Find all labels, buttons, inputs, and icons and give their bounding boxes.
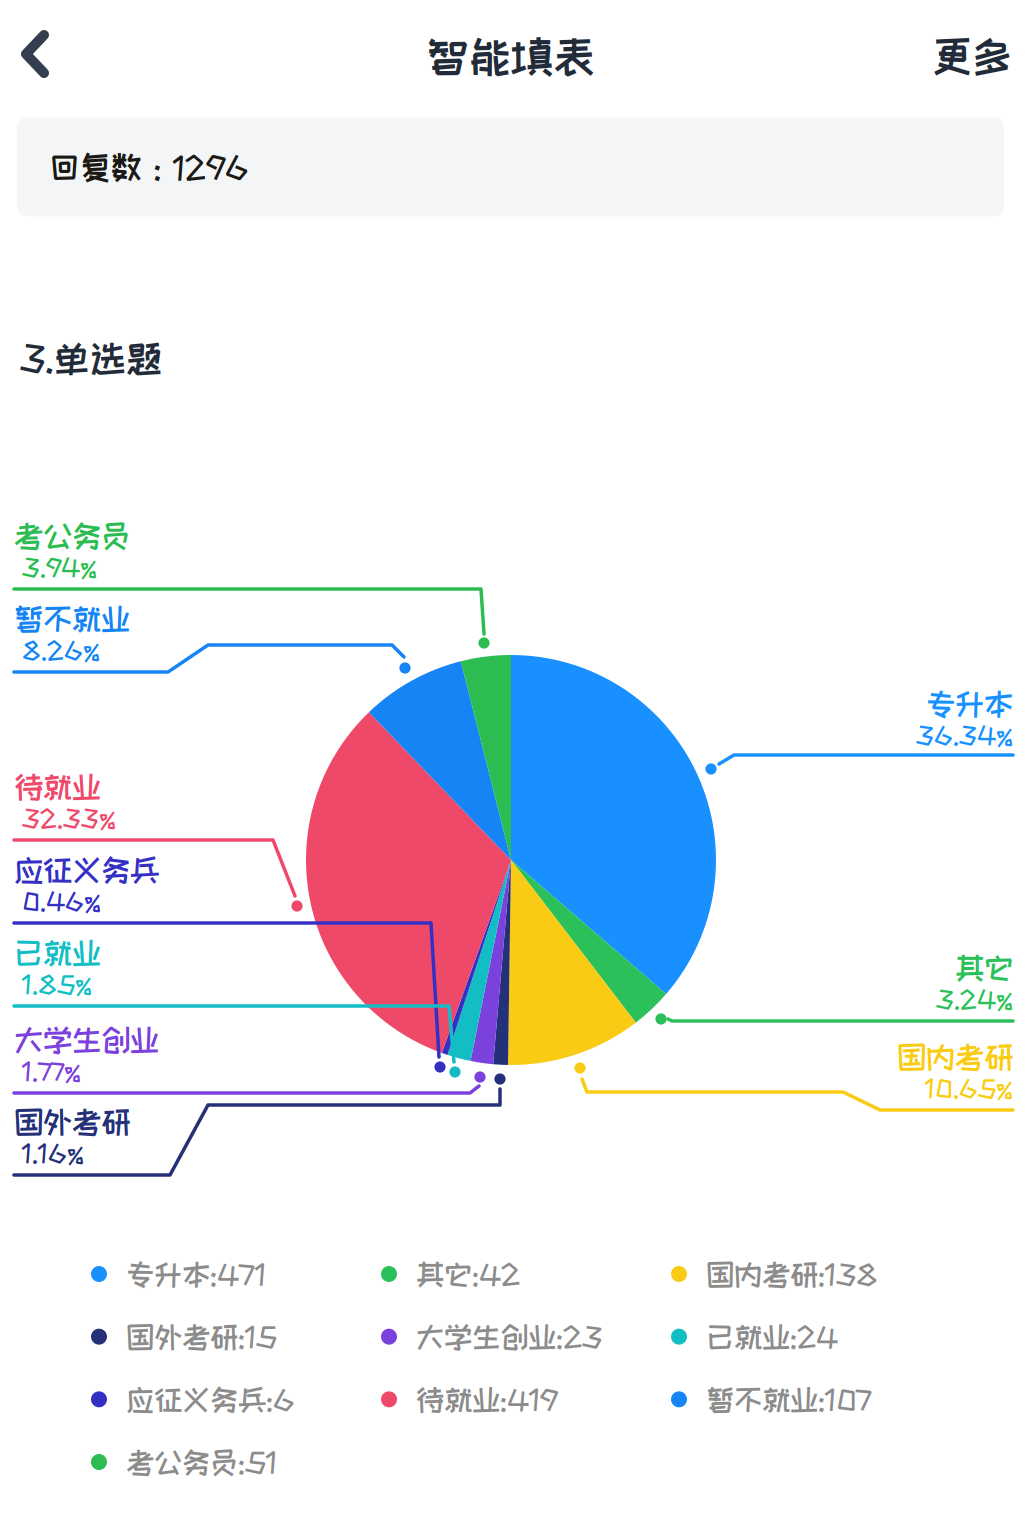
staticText: 3.单选题 xyxy=(20,339,162,377)
staticText: 待就业 xyxy=(14,771,101,803)
staticText: 1.85% xyxy=(22,971,92,997)
staticText: 大学生创业:23 xyxy=(416,1321,602,1352)
staticText: 大学生创业 xyxy=(14,1024,159,1056)
staticText: 专升本 xyxy=(926,688,1013,720)
staticText: 1.16% xyxy=(22,1140,84,1166)
staticText: 暂不就业 xyxy=(14,603,130,635)
staticText: 更多 xyxy=(932,34,1012,78)
staticText: 国外考研 xyxy=(14,1106,130,1138)
staticText: 国外考研:15 xyxy=(126,1321,277,1352)
staticText: 8.26% xyxy=(22,637,100,663)
staticText: 专升本:471 xyxy=(126,1259,266,1289)
staticText: 0.46% xyxy=(22,888,101,914)
staticText: 考公务员:51 xyxy=(126,1447,277,1477)
staticText: 回复数：1296 xyxy=(49,151,248,183)
staticText: 已就业 xyxy=(14,937,101,969)
button[interactable]: Back xyxy=(0,4,75,104)
staticText: 其它:42 xyxy=(416,1259,520,1289)
staticText: 待就业:419 xyxy=(416,1384,558,1415)
staticText: 3.24% xyxy=(936,986,1013,1012)
staticText: 1.77% xyxy=(22,1058,81,1084)
staticText: 智能填表 xyxy=(427,33,595,79)
staticText: 应征义务兵:6 xyxy=(126,1384,294,1415)
staticText: 已就业:24 xyxy=(706,1321,838,1352)
staticText: 国内考研:138 xyxy=(706,1259,878,1289)
staticText: 应征义务兵 xyxy=(14,854,159,886)
staticText: 32.33% xyxy=(22,805,116,831)
button[interactable]: 更多 xyxy=(902,14,1012,98)
staticText: 暂不就业:107 xyxy=(706,1384,872,1415)
staticText: 国内考研 xyxy=(897,1041,1013,1073)
staticText: 其它 xyxy=(955,952,1013,984)
staticText: 3.94% xyxy=(22,554,97,580)
staticText: 36.34% xyxy=(916,722,1013,748)
staticText: 10.65% xyxy=(925,1075,1013,1101)
staticText: 考公务员 xyxy=(14,520,130,552)
